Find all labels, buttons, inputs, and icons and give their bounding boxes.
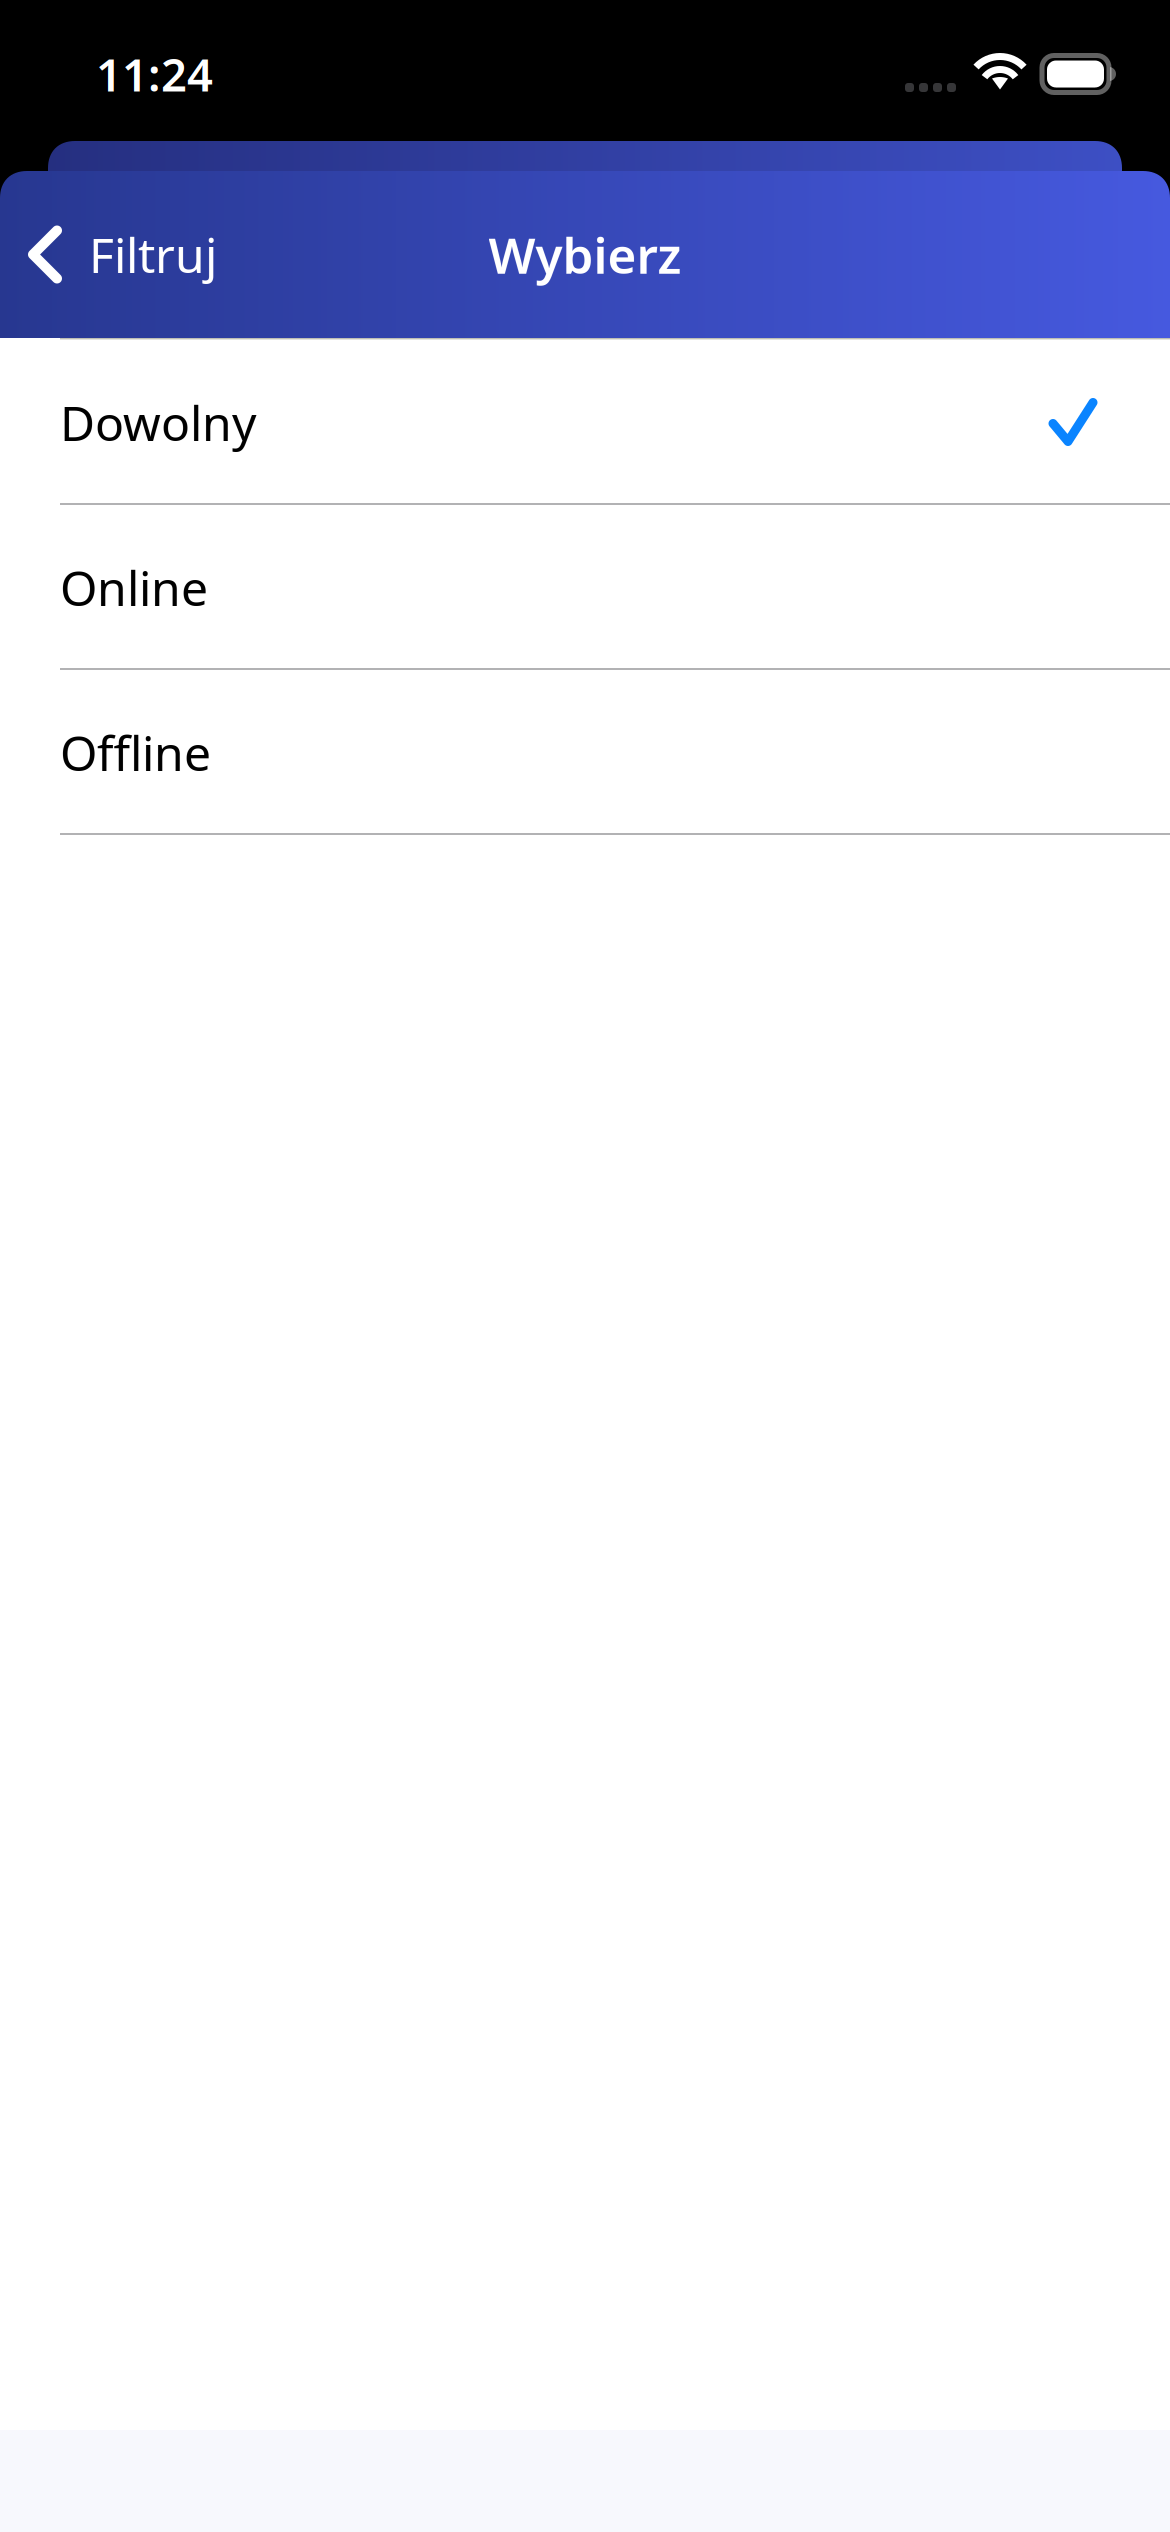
staticText: 11:24: [96, 44, 213, 104]
staticText: Dowolny: [60, 391, 256, 454]
staticText: Wybierz: [488, 222, 681, 287]
button[interactable]: Dowolny: [0, 340, 1170, 505]
staticText: Filtruj: [89, 223, 217, 286]
button[interactable]: Offline: [0, 670, 1170, 835]
button[interactable]: Back to Filtruj: [0, 201, 217, 308]
staticText: Offline: [60, 721, 211, 784]
button[interactable]: Online: [0, 505, 1170, 670]
staticText: Online: [60, 556, 208, 619]
